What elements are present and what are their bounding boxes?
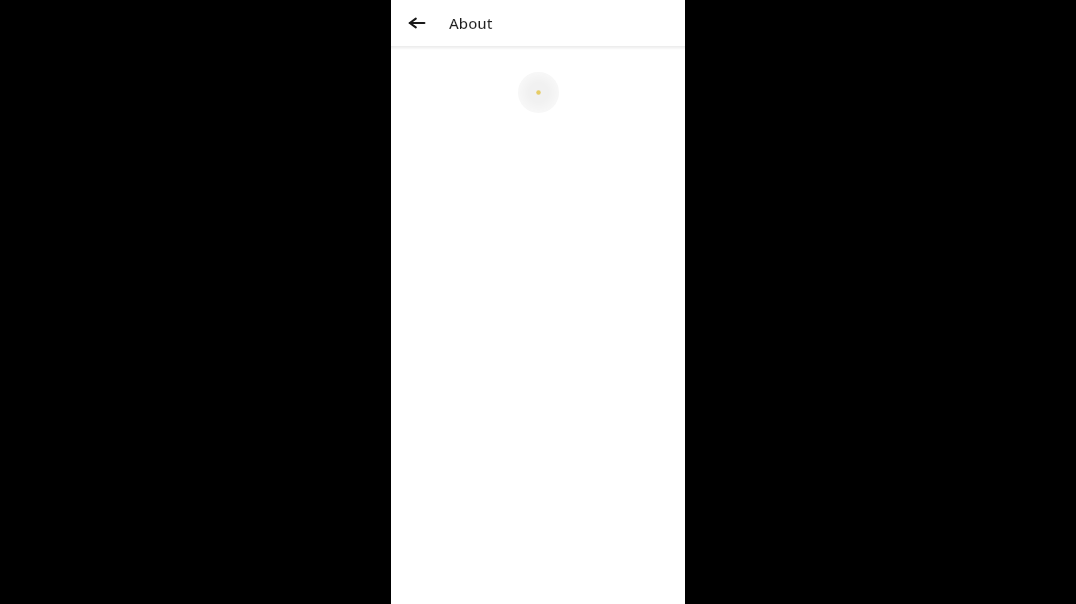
button[interactable]: Back [397, 3, 437, 43]
staticText: About [449, 13, 493, 33]
